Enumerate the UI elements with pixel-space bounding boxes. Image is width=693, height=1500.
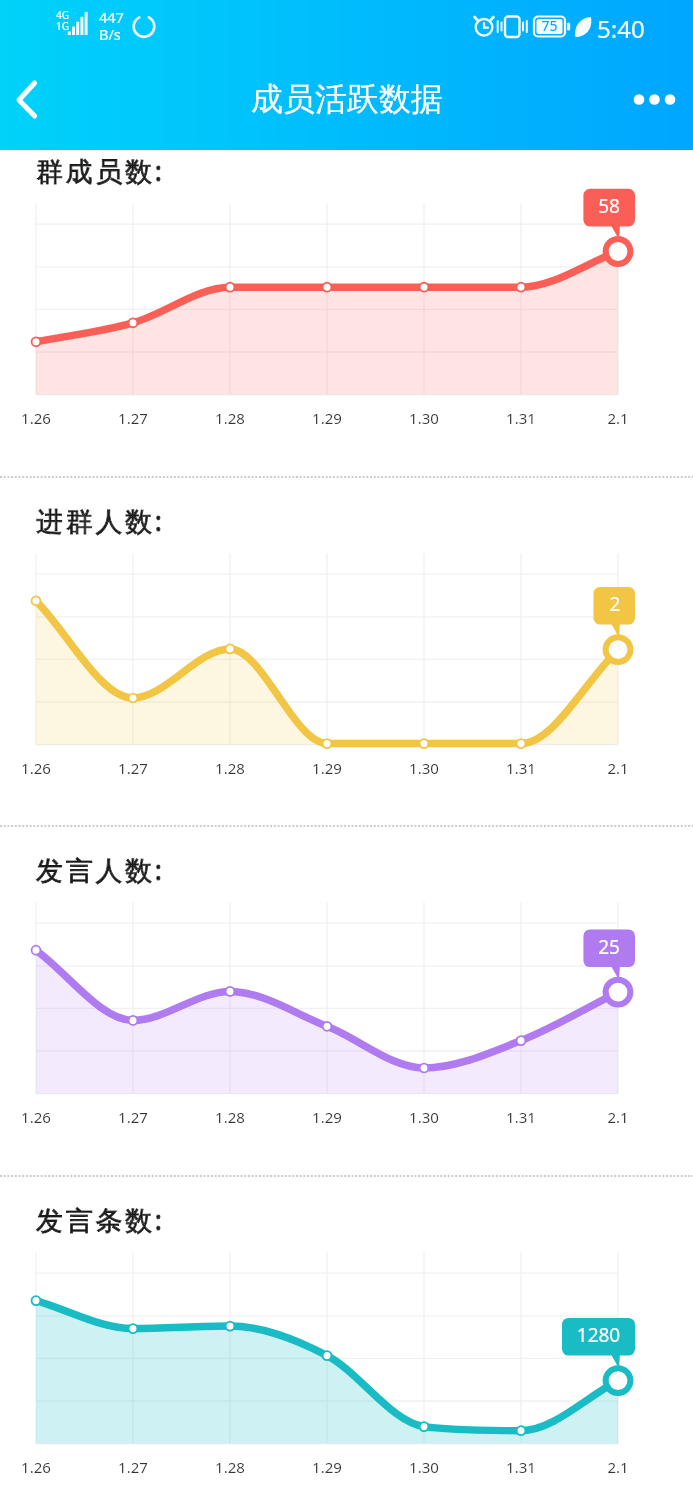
staticText: 1280 [562,1322,635,1348]
staticText: 1.27 [103,408,163,428]
staticText: 发言人数: [36,851,165,888]
staticText: 发言人数: [36,851,165,888]
staticText: 1.28 [200,408,260,428]
staticText: 1.29 [297,408,357,428]
staticText: 发言条数: [36,1201,165,1238]
staticText: 1.31 [491,758,551,778]
button[interactable]: Back [0,70,60,130]
button[interactable]: More options [636,76,684,124]
staticText: 2.1 [588,1107,648,1127]
button[interactable]: 进群人数: [0,476,693,826]
staticText: 1.26 [6,408,66,428]
staticText: 1.31 [491,1107,551,1127]
staticText: 群成员数: [36,152,165,189]
button[interactable]: 发言条数: [0,1175,693,1500]
staticText: 1.30 [394,1107,454,1127]
staticText: 75 [534,16,565,35]
staticText: 2.1 [588,408,648,428]
staticText: 1.30 [394,758,454,778]
button[interactable]: 群成员数: [0,126,693,476]
staticText: 1.28 [200,1457,260,1477]
staticText: 4G 1G [56,8,69,33]
staticText: 2.1 [588,758,648,778]
staticText: 1.30 [394,1457,454,1477]
staticText: 1.26 [6,1107,66,1127]
staticText: 1.29 [297,1107,357,1127]
staticText: 5:40 [597,12,645,45]
staticText: 群成员数: [36,152,165,189]
staticText: 2.1 [588,1457,648,1477]
staticText: 1.26 [6,758,66,778]
staticText: 447 B/s [99,7,124,44]
staticText: 1.30 [394,408,454,428]
staticText: 成员活跃数据 [251,79,443,119]
button[interactable]: 发言人数: [0,825,693,1175]
staticText: 发言条数: [36,1201,165,1238]
staticText: 25 [583,934,635,960]
staticText: 进群人数: [36,502,165,539]
staticText: 1.27 [103,758,163,778]
staticText: 1.29 [297,758,357,778]
staticText: 1.27 [103,1107,163,1127]
staticText: 1.28 [200,1107,260,1127]
staticText: 1.28 [200,758,260,778]
staticText: 1.31 [491,1457,551,1477]
staticText: 1.26 [6,1457,66,1477]
staticText: 1.27 [103,1457,163,1477]
staticText: 58 [583,193,635,219]
staticText: 1.29 [297,1457,357,1477]
staticText: 进群人数: [36,502,165,539]
staticText: 1.31 [491,408,551,428]
staticText: 2 [594,591,636,617]
